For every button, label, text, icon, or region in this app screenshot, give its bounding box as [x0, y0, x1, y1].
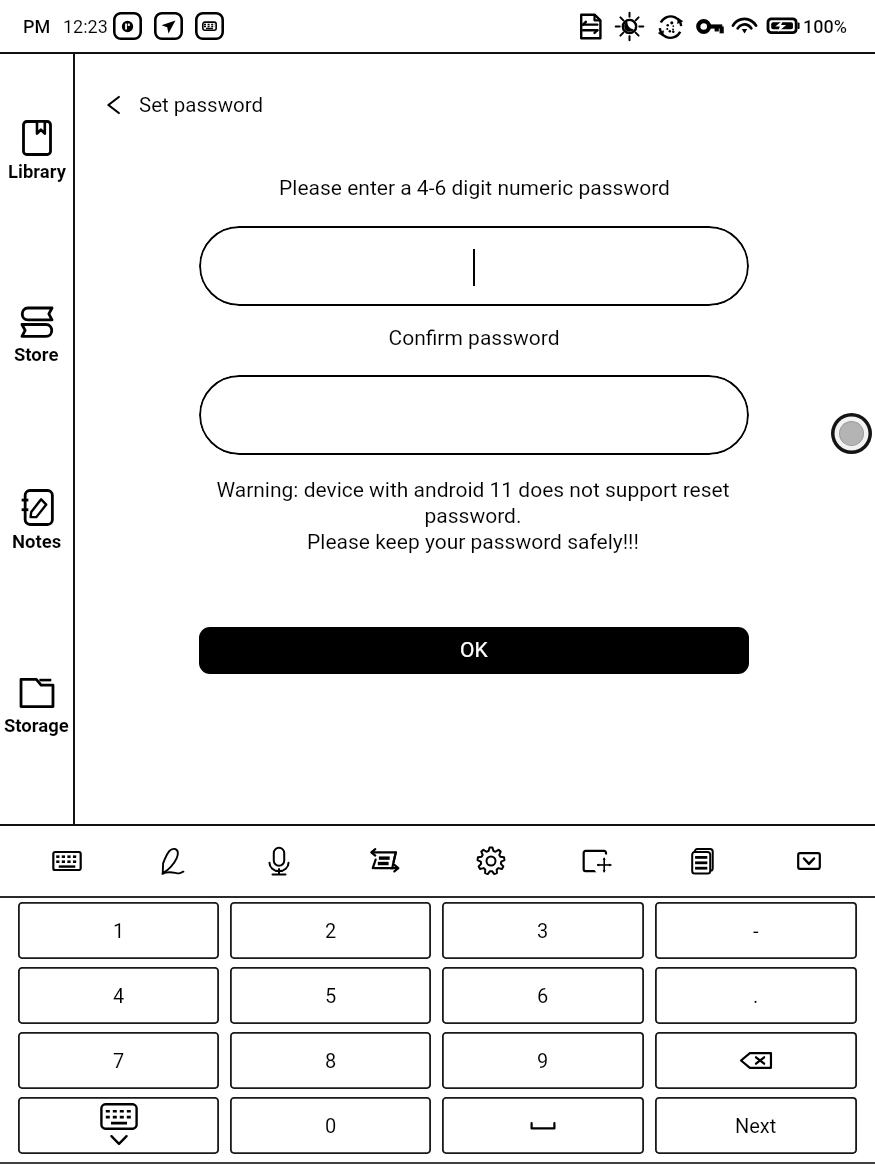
- button[interactable]: 6: [442, 967, 644, 1024]
- button[interactable]: 2: [230, 902, 431, 959]
- button[interactable]: Library: [0, 120, 73, 183]
- staticText: PM: [23, 16, 51, 37]
- button[interactable]: Wi-Fi: [730, 12, 759, 41]
- button[interactable]: [199, 226, 749, 306]
- button[interactable]: 4: [18, 967, 219, 1024]
- button[interactable]: Refresh mode: [575, 11, 606, 42]
- button[interactable]: SPACE: [442, 1097, 644, 1154]
- staticText: 1: [113, 919, 125, 942]
- button[interactable]: Store: [0, 306, 73, 366]
- button[interactable]: 5: [230, 967, 431, 1024]
- button[interactable]: KB: [18, 1097, 219, 1154]
- button[interactable]: 1: [18, 902, 219, 959]
- staticText: 2: [325, 919, 337, 942]
- staticText: .: [753, 984, 759, 1007]
- button[interactable]: Password: [695, 11, 726, 42]
- staticText: Confirm password: [388, 326, 560, 351]
- staticText: 7: [113, 1049, 125, 1072]
- staticText: Notes: [12, 531, 62, 553]
- button[interactable]: Brightness: [614, 11, 645, 42]
- button[interactable]: Clipboard: [650, 826, 756, 896]
- staticText: 9: [537, 1049, 549, 1072]
- button[interactable]: Notes: [0, 489, 73, 553]
- staticText: Library: [8, 161, 66, 183]
- staticText: Warning: device with android 11 does not…: [212, 478, 734, 554]
- staticText: 0: [325, 1114, 337, 1137]
- other: Battery: [767, 14, 799, 38]
- staticText: Storage: [4, 715, 69, 737]
- button[interactable]: DEL: [655, 1032, 857, 1089]
- button[interactable]: [199, 375, 749, 455]
- staticText: Set password: [139, 93, 264, 117]
- staticText: Please enter a 4-6 digit numeric passwor…: [279, 176, 670, 201]
- staticText: 5: [325, 984, 337, 1007]
- staticText: 12:23: [63, 16, 108, 37]
- button[interactable]: 0: [230, 1097, 431, 1154]
- button[interactable]: Resize keyboard: [544, 826, 650, 896]
- button[interactable]: Set password: [103, 86, 264, 124]
- button[interactable]: 7: [18, 1032, 219, 1089]
- button[interactable]: 3: [442, 902, 644, 959]
- button[interactable]: 8: [230, 1032, 431, 1089]
- staticText: 3: [537, 919, 549, 942]
- staticText: 8: [325, 1049, 337, 1072]
- button[interactable]: Storage: [0, 676, 73, 737]
- button[interactable]: Keyboard: [13, 826, 120, 896]
- button[interactable]: Display mode: [113, 12, 142, 40]
- button[interactable]: Floating assistant ball: [831, 413, 872, 454]
- staticText: 4: [113, 984, 125, 1007]
- button[interactable]: Hide keyboard: [756, 826, 862, 896]
- button[interactable]: Handwriting: [120, 826, 226, 896]
- button[interactable]: Next: [655, 1097, 857, 1154]
- button[interactable]: -: [655, 902, 857, 959]
- staticText: -: [753, 919, 759, 942]
- staticText: Store: [14, 344, 59, 366]
- staticText: Next: [735, 1114, 777, 1137]
- button[interactable]: OK: [199, 627, 749, 674]
- button[interactable]: .: [655, 967, 857, 1024]
- button[interactable]: Voice input: [226, 826, 332, 896]
- button[interactable]: 9: [442, 1032, 644, 1089]
- button[interactable]: Settings: [438, 826, 544, 896]
- staticText: 6: [537, 984, 549, 1007]
- staticText: OK: [460, 638, 488, 663]
- button[interactable]: Navigation ball: [154, 12, 183, 40]
- button[interactable]: Dust free mode: [655, 11, 686, 42]
- staticText: 100%: [803, 16, 847, 37]
- button[interactable]: Keyboard: [195, 12, 224, 40]
- button[interactable]: Translate: [332, 826, 438, 896]
